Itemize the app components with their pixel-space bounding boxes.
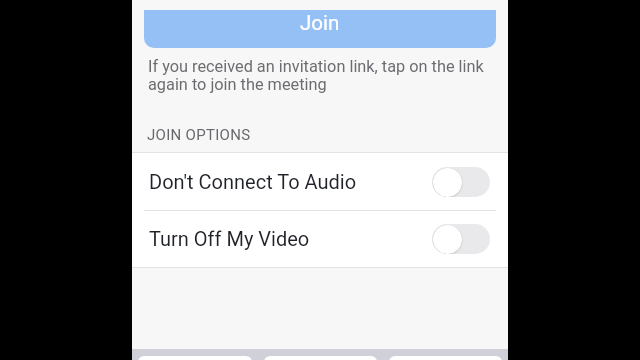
staticText: JOIN OPTIONS [147,126,251,144]
staticText: Don't Connect To Audio [149,170,357,193]
staticText: Turn Off My Video [149,227,310,250]
button[interactable]: Turn Off My Video [132,210,508,267]
button[interactable]: Toggle option off [432,224,490,254]
staticText: Join [300,11,340,35]
button[interactable]: Toggle option off [432,167,490,197]
button[interactable]: Don't Connect To Audio [132,153,508,210]
staticText: If you received an invitation link, tap … [148,57,484,94]
button[interactable]: Join [144,10,496,48]
